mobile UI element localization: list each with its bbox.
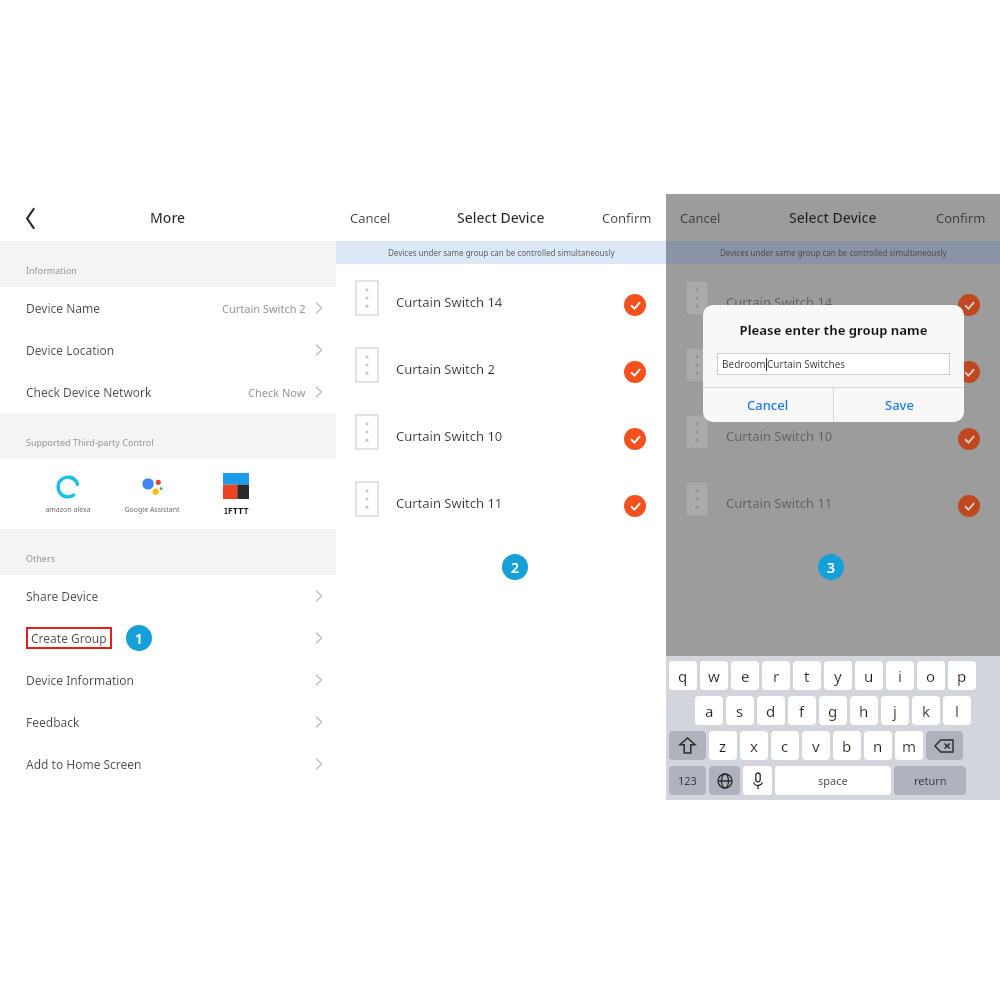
- button[interactable]: b: [833, 731, 861, 760]
- button[interactable]: r: [762, 661, 790, 690]
- button[interactable]: Device Information: [0, 659, 336, 701]
- button[interactable]: t: [793, 661, 821, 690]
- staticText: Bedroom: [722, 357, 766, 371]
- button[interactable]: [669, 731, 706, 760]
- button[interactable]: space: [775, 766, 891, 795]
- staticText: r: [773, 666, 780, 686]
- button[interactable]: w: [700, 661, 728, 690]
- button[interactable]: e: [731, 661, 759, 690]
- staticText: Curtain Switch 14: [726, 293, 833, 311]
- button[interactable]: Add to Home Screen: [0, 743, 336, 785]
- button[interactable]: n: [864, 731, 892, 760]
- staticText: Google Assistant: [124, 505, 180, 515]
- staticText: m: [902, 736, 917, 756]
- button[interactable]: Curtain Switch 10: [666, 398, 1000, 465]
- button[interactable]: d: [757, 696, 785, 725]
- staticText: Save: [885, 396, 914, 414]
- button[interactable]: f: [788, 696, 816, 725]
- button[interactable]: Feedback: [0, 701, 336, 743]
- button[interactable]: y: [824, 661, 852, 690]
- button[interactable]: m: [895, 731, 923, 760]
- staticText: o: [926, 666, 936, 686]
- staticText: g: [828, 701, 838, 721]
- button[interactable]: [709, 766, 740, 795]
- staticText: Others: [26, 552, 55, 564]
- button[interactable]: Device Name: [0, 287, 336, 329]
- button[interactable]: Curtain Switch 2: [666, 331, 1000, 398]
- staticText: amazon alexa: [45, 505, 91, 515]
- button[interactable]: Cancel: [703, 388, 833, 422]
- button[interactable]: Curtain Switch 14: [666, 264, 1000, 331]
- staticText: Devices under same group can be controll…: [720, 247, 947, 258]
- button[interactable]: Confirm: [602, 209, 652, 227]
- button[interactable]: g: [819, 696, 847, 725]
- button[interactable]: amazon alexa: [26, 459, 110, 529]
- staticText: d: [766, 701, 776, 721]
- staticText: w: [708, 666, 720, 686]
- button[interactable]: Share Device: [0, 575, 336, 617]
- staticText: a: [705, 701, 714, 721]
- button[interactable]: q: [669, 661, 697, 690]
- button[interactable]: j: [881, 696, 909, 725]
- button[interactable]: Cancel: [350, 209, 391, 227]
- button[interactable]: [926, 731, 963, 760]
- button[interactable]: Cancel: [680, 209, 721, 227]
- button[interactable]: IFTTT: [194, 459, 278, 529]
- staticText: Curtain Switch 10: [726, 427, 833, 445]
- button[interactable]: l: [943, 696, 971, 725]
- button[interactable]: Bedroom: [717, 353, 950, 375]
- button[interactable]: Curtain Switch 11: [336, 465, 666, 532]
- staticText: Device Name: [26, 300, 100, 316]
- staticText: l: [955, 701, 959, 721]
- button[interactable]: Create Group: [0, 617, 336, 659]
- button[interactable]: Device Location: [0, 329, 336, 371]
- staticText: Cancel: [747, 396, 789, 414]
- staticText: Curtain Switch 2: [222, 301, 306, 316]
- staticText: t: [804, 666, 810, 686]
- button[interactable]: k: [912, 696, 940, 725]
- button[interactable]: o: [917, 661, 945, 690]
- button[interactable]: Google Assistant: [110, 459, 194, 529]
- staticText: Curtain Switch 2: [396, 360, 495, 378]
- button[interactable]: s: [726, 696, 754, 725]
- staticText: space: [818, 773, 848, 788]
- staticText: Add to Home Screen: [26, 756, 142, 772]
- staticText: Check Device Network: [26, 384, 152, 400]
- staticText: Information: [26, 264, 77, 276]
- staticText: b: [842, 736, 852, 756]
- button[interactable]: [743, 766, 772, 795]
- staticText: Curtain Switch 10: [396, 427, 503, 445]
- button[interactable]: Curtain Switch 10: [336, 398, 666, 465]
- button[interactable]: i: [886, 661, 914, 690]
- button[interactable]: p: [948, 661, 976, 690]
- staticText: Select Device: [789, 208, 877, 227]
- staticText: Share Device: [26, 588, 99, 604]
- button[interactable]: v: [802, 731, 830, 760]
- button[interactable]: return: [894, 766, 966, 795]
- button[interactable]: x: [740, 731, 768, 760]
- staticText: h: [859, 701, 869, 721]
- staticText: 2: [511, 558, 520, 577]
- staticText: IFTTT: [224, 504, 249, 516]
- button[interactable]: Curtain Switch 11: [666, 465, 1000, 532]
- button[interactable]: Curtain Switch 14: [336, 264, 666, 331]
- button[interactable]: Curtain Switch 2: [336, 331, 666, 398]
- staticText: n: [873, 736, 883, 756]
- staticText: Curtain Switch 14: [396, 293, 503, 311]
- staticText: Create Group: [31, 630, 107, 646]
- button[interactable]: z: [709, 731, 737, 760]
- staticText: Select Device: [457, 208, 545, 227]
- staticText: Device Location: [26, 342, 115, 358]
- button[interactable]: u: [855, 661, 883, 690]
- staticText: i: [898, 666, 902, 686]
- button[interactable]: 123: [669, 766, 706, 795]
- button[interactable]: Back: [18, 205, 44, 231]
- button[interactable]: Confirm: [936, 209, 986, 227]
- staticText: k: [922, 701, 931, 721]
- button[interactable]: c: [771, 731, 799, 760]
- button[interactable]: Check Device Network: [0, 371, 336, 413]
- staticText: f: [799, 701, 805, 721]
- button[interactable]: Save: [834, 388, 964, 422]
- button[interactable]: a: [695, 696, 723, 725]
- button[interactable]: h: [850, 696, 878, 725]
